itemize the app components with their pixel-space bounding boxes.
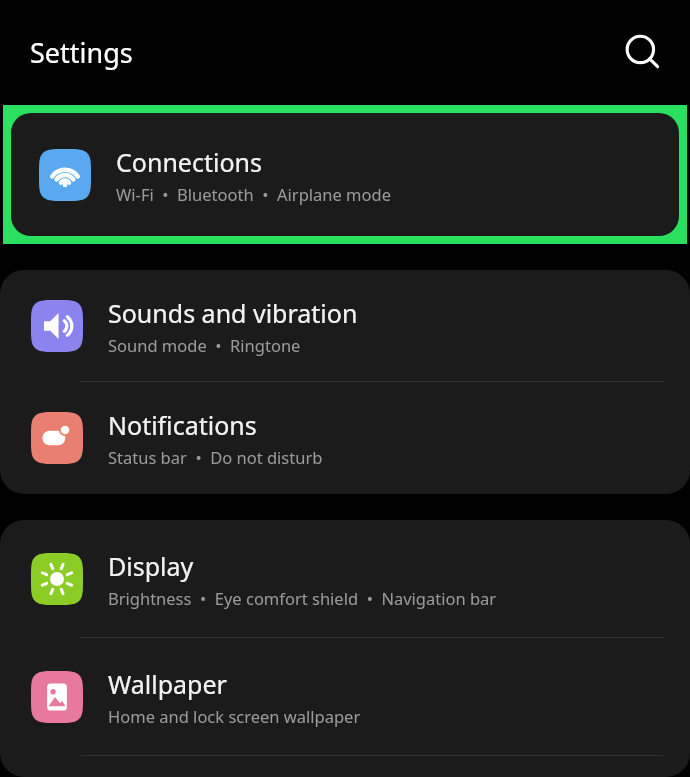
button[interactable]: Connections <box>11 113 679 236</box>
staticText: Wallpaper <box>108 667 227 701</box>
staticText: Wi-Fi • Bluetooth • Airplane mode <box>116 183 391 205</box>
staticText: Home and lock screen wallpaper <box>108 705 361 727</box>
staticText: Brightness • Eye comfort shield • Naviga… <box>108 587 497 609</box>
staticText: Settings <box>30 34 133 71</box>
staticText: Display <box>108 549 194 583</box>
staticText: Connections <box>116 145 262 179</box>
staticText: Sounds and vibration <box>108 296 358 330</box>
staticText: Notifications <box>108 408 257 442</box>
button[interactable]: Search <box>619 29 667 77</box>
button[interactable]: Notifications <box>0 382 690 494</box>
staticText: Status bar • Do not disturb <box>108 446 323 468</box>
button[interactable]: Display <box>0 520 690 637</box>
button[interactable]: Sounds and vibration <box>0 270 690 381</box>
button[interactable]: Wallpaper <box>0 638 690 755</box>
staticText: Sound mode • Ringtone <box>108 334 301 356</box>
